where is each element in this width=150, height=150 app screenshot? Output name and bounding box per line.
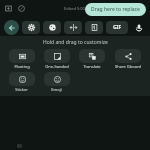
button[interactable]: Back	[4, 20, 19, 35]
staticText: Edited 5:00 AM	[64, 6, 93, 11]
button[interactable]: Clipboard	[85, 21, 103, 34]
staticText: One-handed	[45, 64, 69, 69]
button[interactable]: One-handed	[39, 49, 74, 69]
staticText: Floating	[14, 64, 30, 69]
button[interactable]: Resize	[64, 21, 82, 34]
staticText: Share Gboard	[115, 64, 141, 69]
button[interactable]: Themes	[43, 21, 61, 34]
staticText: Drag here to replace	[91, 6, 140, 13]
button[interactable]: Sticker	[4, 72, 39, 92]
button[interactable]: Voice input	[131, 20, 146, 35]
staticText: Sticker	[15, 87, 28, 92]
staticText: Hold and drag to customize	[43, 39, 108, 46]
button[interactable]: Translate	[74, 49, 110, 69]
button[interactable]: GIF	[106, 21, 128, 34]
button[interactable]: Drag here to replace	[85, 3, 146, 16]
button[interactable]: Floating	[4, 49, 39, 69]
button[interactable]: Emoji	[39, 72, 74, 92]
button[interactable]: Share Gboard	[110, 49, 146, 69]
staticText: Translate	[83, 64, 101, 69]
button[interactable]: Settings	[22, 21, 40, 34]
staticText: Emoji	[51, 87, 62, 92]
staticText: GIF	[113, 24, 122, 31]
